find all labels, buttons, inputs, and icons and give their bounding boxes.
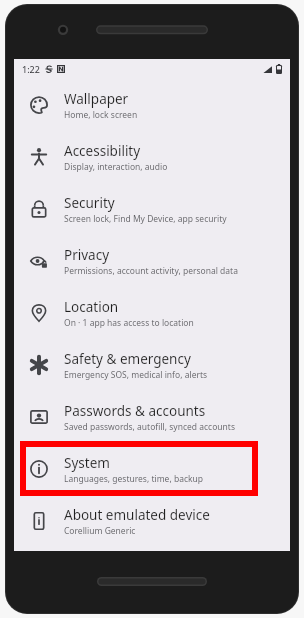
button[interactable]: Privacy [14, 235, 290, 287]
button[interactable]: System [14, 443, 290, 495]
staticText: Wallpaper [64, 90, 129, 108]
staticText: 1:22 [22, 63, 40, 75]
staticText: Privacy [64, 246, 110, 264]
staticText: Permissions, account activity, personal … [64, 265, 238, 277]
button[interactable]: Safety & emergency [14, 339, 290, 391]
button[interactable]: Location [14, 287, 290, 339]
staticText: Languages, gestures, time, backup [64, 473, 204, 485]
staticText: Accessibility [64, 142, 141, 160]
staticText: Saved passwords, autofill, synced accoun… [64, 421, 235, 433]
button[interactable]: Wallpaper [14, 79, 290, 131]
staticText: Security [64, 194, 115, 212]
button[interactable]: Passwords & accounts [14, 391, 290, 443]
staticText: Location [64, 298, 119, 316]
staticText: Screen lock, Find My Device, app securit… [64, 213, 227, 225]
staticText: About emulated device [64, 506, 210, 524]
staticText: Passwords & accounts [64, 402, 206, 420]
staticText: Home, lock screen [64, 109, 138, 121]
staticText: System [64, 454, 110, 472]
button[interactable]: Security [14, 183, 290, 235]
staticText: Emergency SOS, medical info, alerts [64, 369, 208, 381]
button[interactable]: Accessibility [14, 131, 290, 183]
staticText: On · 1 app has access to location [64, 317, 194, 329]
button[interactable]: About emulated device [14, 495, 290, 547]
staticText: Display, interaction, audio [64, 161, 168, 173]
staticText: Corellium Generic [64, 525, 136, 537]
staticText: Safety & emergency [64, 350, 191, 368]
